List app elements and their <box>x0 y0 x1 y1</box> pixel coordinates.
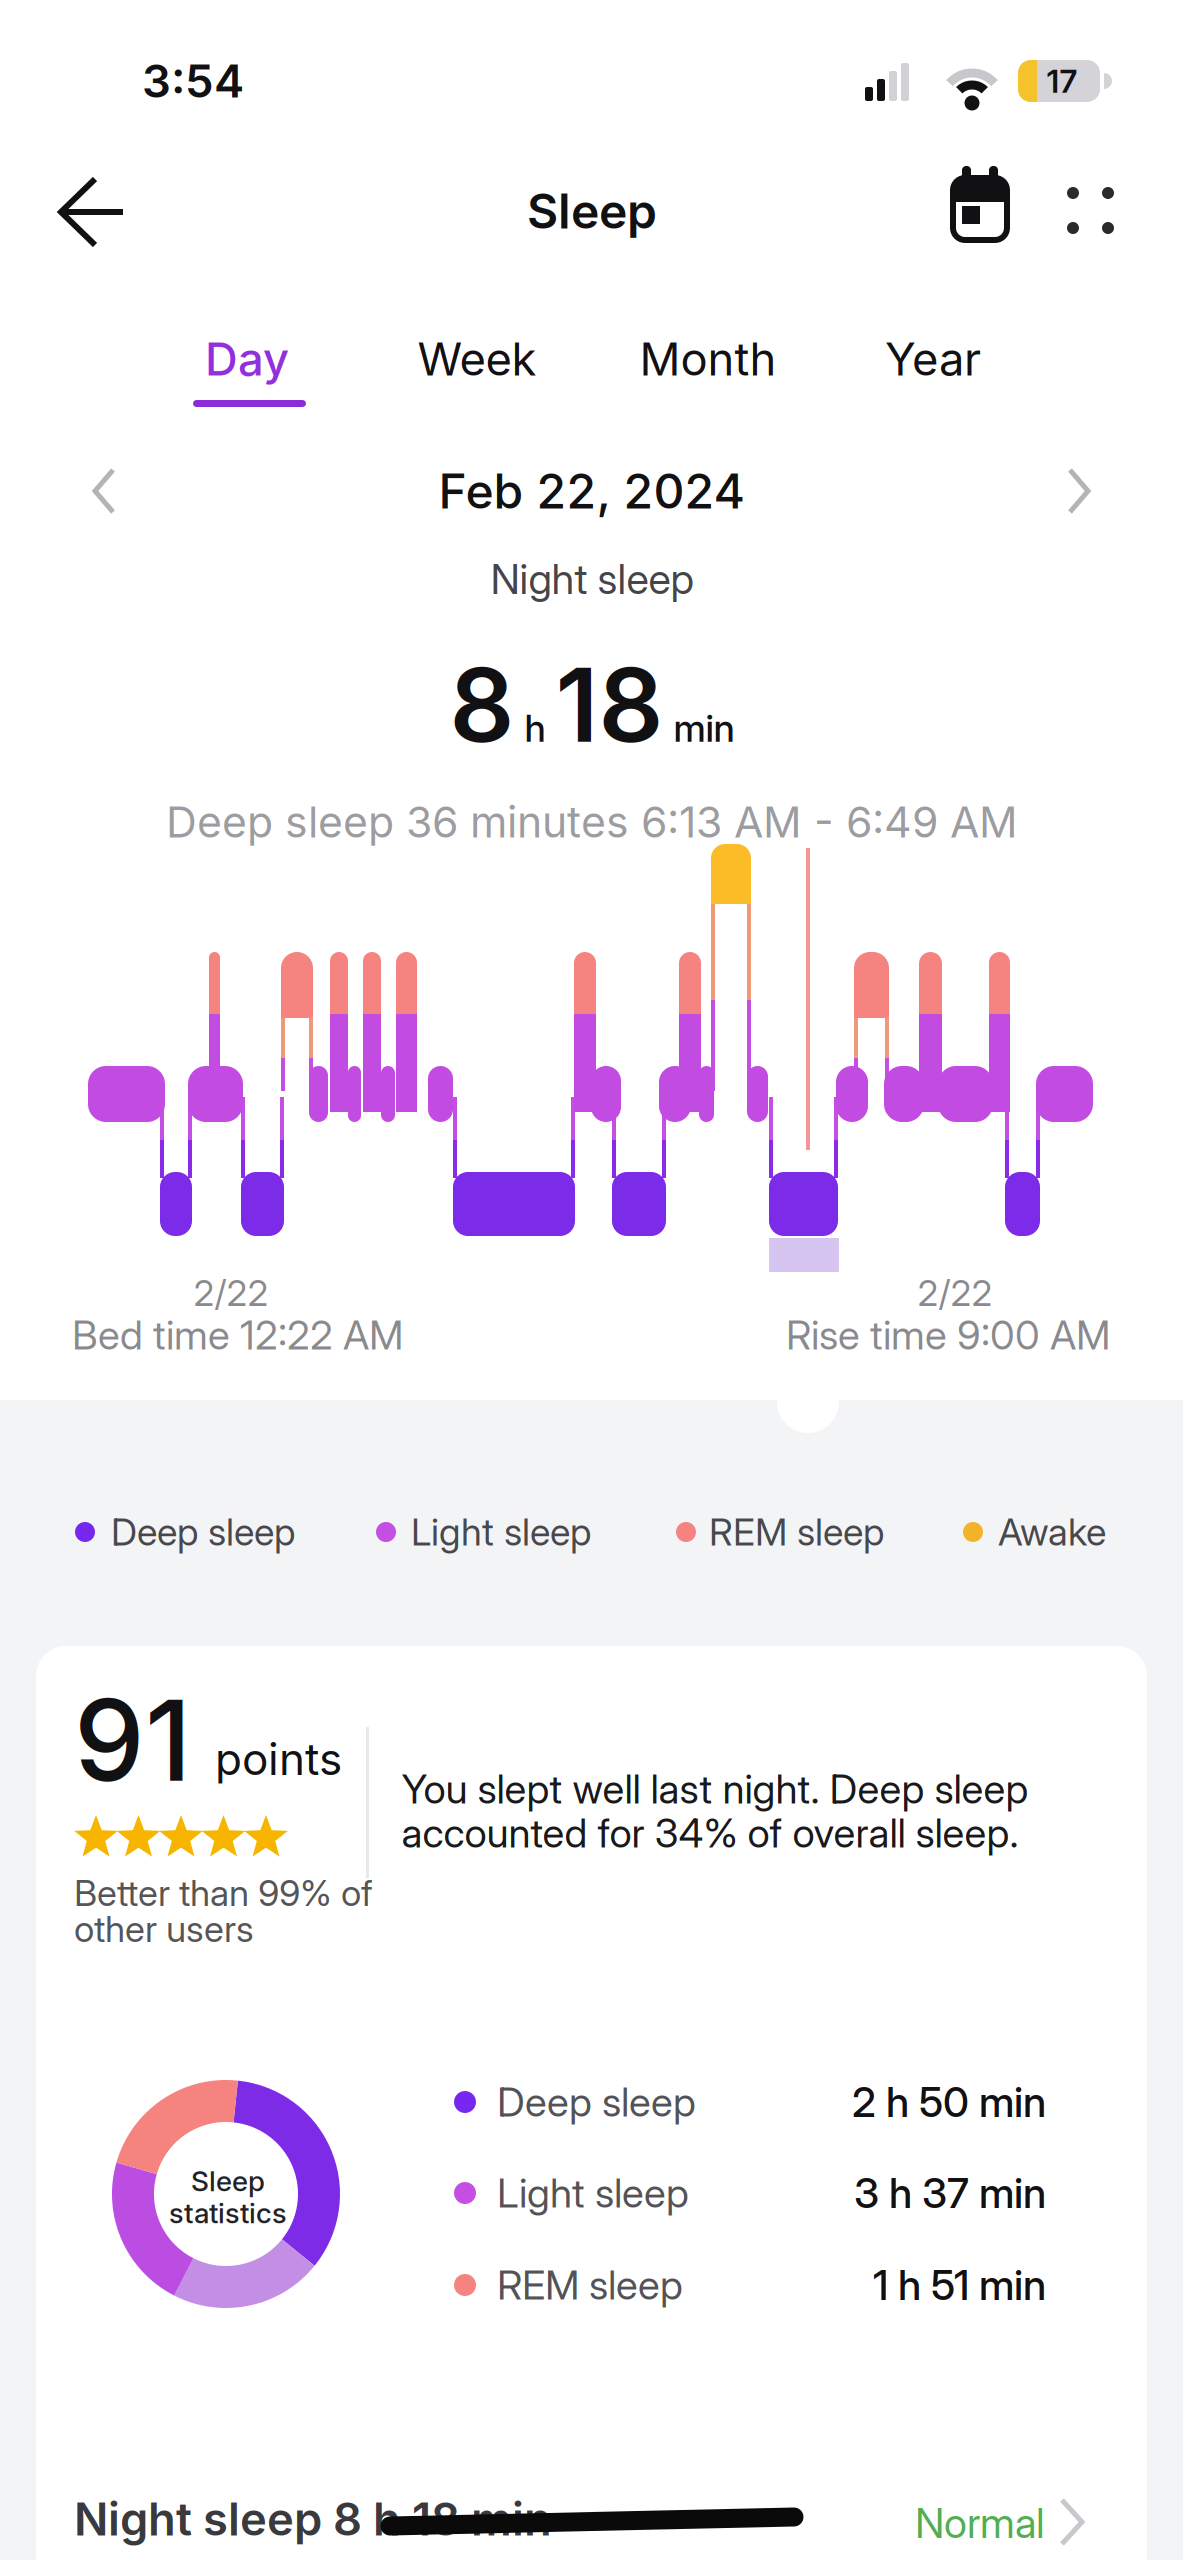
button[interactable]: Day <box>172 324 322 394</box>
staticText: You slept well last night. Deep sleep <box>401 1765 1028 1813</box>
staticText: 2/22 <box>917 1272 992 1314</box>
staticText: h <box>524 706 545 750</box>
staticText: Rise time 9:00 AM <box>786 1311 1110 1359</box>
button[interactable] <box>1050 171 1130 251</box>
staticText: 8 <box>449 645 514 765</box>
staticText: statistics <box>169 2196 287 2229</box>
staticText: Week <box>417 332 536 386</box>
staticText: other users <box>74 1908 254 1950</box>
staticText: Light sleep <box>411 1510 591 1554</box>
staticText: 18 <box>555 645 663 765</box>
staticText: Sleep <box>527 183 657 239</box>
staticText: points <box>215 1733 342 1785</box>
staticText: 91 <box>74 1674 191 1806</box>
staticText: 3 h 37 min <box>854 2169 1046 2217</box>
staticText: REM sleep <box>497 2261 683 2309</box>
button[interactable] <box>47 167 137 257</box>
staticText: Deep sleep <box>111 1510 295 1554</box>
staticText: Awake <box>998 1510 1106 1554</box>
staticText: Month <box>639 332 776 386</box>
staticText: 17 <box>1046 62 1077 100</box>
staticText: Night sleep <box>490 555 693 603</box>
button[interactable]: Night sleep 8 h 18 min <box>36 2459 1147 2560</box>
staticText: 3:54 <box>142 54 244 108</box>
staticText: 2 h 50 min <box>852 2078 1046 2126</box>
staticText: Deep sleep <box>497 2078 696 2126</box>
staticText: min <box>673 706 734 750</box>
button[interactable] <box>66 451 146 531</box>
button[interactable] <box>935 164 1025 254</box>
staticText: REM sleep <box>709 1510 884 1554</box>
staticText: Light sleep <box>497 2169 689 2217</box>
staticText: Night sleep 8 h 18 min <box>74 2492 552 2546</box>
staticText: Normal <box>915 2499 1045 2547</box>
staticText: Better than 99% of <box>74 1872 373 1914</box>
staticText: Day <box>205 332 289 386</box>
staticText: 1 h 51 min <box>873 2261 1046 2309</box>
button[interactable]: Month <box>608 324 808 394</box>
staticText: 2/22 <box>193 1272 268 1314</box>
staticText: Bed time 12:22 AM <box>72 1311 403 1359</box>
staticText: Year <box>885 332 981 386</box>
staticText: Deep sleep 36 minutes 6:13 AM - 6:49 AM <box>166 797 1018 847</box>
button[interactable] <box>1037 451 1117 531</box>
button[interactable]: Year <box>858 324 1008 394</box>
staticText: Sleep <box>191 2164 265 2197</box>
staticText: accounted for 34% of overall sleep. <box>401 1809 1018 1857</box>
button[interactable]: Week <box>392 324 562 394</box>
staticText: Feb 22, 2024 <box>438 463 745 519</box>
